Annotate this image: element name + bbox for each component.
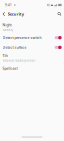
- button[interactable]: Tilt: [0, 52, 64, 64]
- staticText: Night: [2, 22, 11, 27]
- button[interactable]: Detect surface: [0, 43, 64, 52]
- button[interactable]: Spellcast: [0, 64, 64, 73]
- button[interactable]: Back: [1, 10, 7, 18]
- staticText: Detect surface: [2, 45, 26, 50]
- staticText: Internal battery meter: [2, 59, 35, 63]
- staticText: Spellcast: [2, 66, 17, 71]
- staticText: 9:41: [5, 3, 12, 7]
- staticText: Security: [8, 11, 24, 17]
- staticText: Tilt: [2, 53, 7, 58]
- staticText: Detect presence switch: [2, 35, 41, 40]
- button[interactable]: Night: [0, 22, 64, 33]
- staticText: Battery: [2, 28, 12, 32]
- button[interactable]: Detect presence switch: [0, 33, 64, 43]
- button[interactable]: Search: [56, 10, 63, 18]
